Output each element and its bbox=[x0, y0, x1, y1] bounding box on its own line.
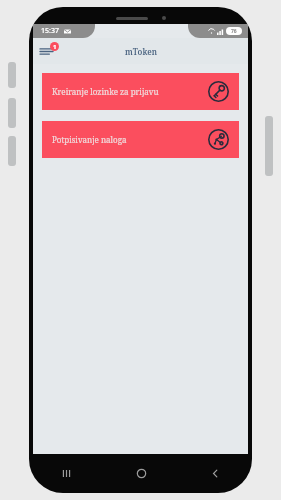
button[interactable]: Potpisivanje naloga bbox=[42, 121, 239, 158]
staticText: Potpisivanje naloga bbox=[52, 134, 208, 145]
staticText: 15:37 bbox=[41, 26, 59, 36]
staticText: 76 bbox=[231, 28, 237, 35]
staticText: 1 bbox=[53, 43, 57, 51]
staticText: Kreiranje lozinke za prijavu bbox=[52, 86, 208, 97]
button[interactable]: Recent apps bbox=[29, 454, 104, 493]
staticText: mToken bbox=[125, 46, 157, 57]
button[interactable]: Kreiranje lozinke za prijavu bbox=[42, 73, 239, 110]
button[interactable]: Home bbox=[104, 454, 178, 493]
button[interactable]: Back bbox=[178, 454, 252, 493]
button[interactable]: Open navigation menu, 1 notification bbox=[38, 40, 60, 62]
